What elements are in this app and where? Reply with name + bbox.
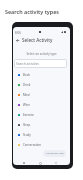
- button[interactable]: Home: [39, 162, 42, 165]
- button[interactable]: Drink: [13, 80, 70, 90]
- button[interactable]: Sleep: [13, 120, 70, 130]
- button[interactable]: Conversation: [13, 140, 70, 150]
- staticText: Exercise: [23, 113, 34, 117]
- staticText: Select an activity type: [13, 52, 70, 56]
- button[interactable]: Meal: [13, 90, 70, 100]
- staticText: Sleep: [23, 123, 31, 127]
- staticText: 8:06: [15, 31, 21, 35]
- button[interactable]: Study: [13, 130, 70, 140]
- staticText: Wine: [23, 103, 30, 107]
- button[interactable]: Wine: [13, 100, 70, 110]
- button[interactable]: Search activities: [14, 59, 67, 68]
- staticText: Conversation: [23, 143, 41, 147]
- staticText: Search activity types: [5, 8, 59, 15]
- staticText: Search activities: [16, 62, 39, 66]
- staticText: Select Activity: [22, 37, 53, 43]
- staticText: Add activity type: [46, 152, 64, 155]
- button[interactable]: Book: [13, 70, 70, 80]
- button[interactable]: Back: [14, 37, 20, 43]
- button[interactable]: Exercise: [13, 110, 70, 120]
- staticText: Meal: [23, 93, 30, 97]
- staticText: Book: [23, 73, 30, 77]
- button[interactable]: Back: [55, 162, 57, 164]
- button[interactable]: Add activity type: [43, 150, 66, 157]
- staticText: Drink: [23, 83, 31, 87]
- staticText: Study: [23, 133, 31, 137]
